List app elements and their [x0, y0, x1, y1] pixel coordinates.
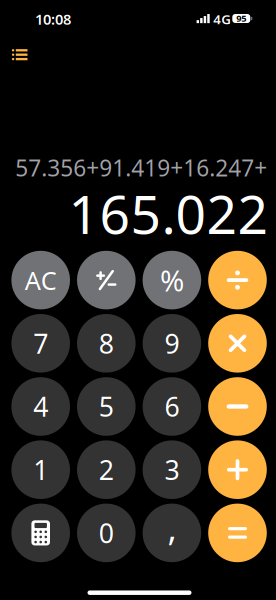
staticText: 4: [33, 389, 48, 424]
button[interactable]: 3: [143, 440, 201, 499]
button[interactable]: 7: [11, 314, 70, 373]
staticText: 0: [99, 515, 114, 551]
button[interactable]: Divide: [208, 251, 267, 309]
staticText: 7: [33, 326, 48, 361]
staticText: 95: [236, 12, 246, 24]
staticText: 1: [33, 452, 48, 487]
button[interactable]: 1: [11, 440, 70, 499]
button[interactable]: 0: [77, 504, 136, 562]
button[interactable]: 2: [77, 440, 136, 499]
button[interactable]: 4: [11, 377, 70, 436]
staticText: 10:08: [35, 9, 71, 29]
staticText: 57.356+91.419+16.247+: [15, 152, 267, 183]
button[interactable]: History: [0, 37, 43, 72]
button[interactable]: %: [143, 251, 201, 309]
staticText: 4G: [213, 10, 231, 28]
staticText: 3: [164, 452, 179, 487]
staticText: 2: [99, 452, 114, 487]
button[interactable]: 6: [143, 377, 201, 436]
staticText: %: [160, 261, 184, 300]
staticText: 6: [164, 389, 179, 424]
button[interactable]: ,: [143, 504, 201, 562]
staticText: 8: [99, 326, 114, 361]
button[interactable]: Equals: [208, 504, 267, 562]
button[interactable]: Multiply: [208, 314, 267, 373]
button[interactable]: Calculator: [11, 504, 70, 562]
staticText: ,: [167, 505, 176, 551]
button[interactable]: 8: [77, 314, 136, 373]
button[interactable]: 5: [77, 377, 136, 436]
button[interactable]: Plus: [208, 440, 267, 499]
staticText: 165.022: [69, 178, 269, 249]
button[interactable]: AC: [11, 251, 70, 309]
staticText: AC: [25, 263, 57, 297]
button[interactable]: Plus minus: [77, 251, 136, 309]
button[interactable]: Minus: [208, 377, 267, 436]
staticText: 5: [99, 389, 114, 424]
staticText: 9: [164, 326, 179, 361]
button[interactable]: 9: [143, 314, 201, 373]
